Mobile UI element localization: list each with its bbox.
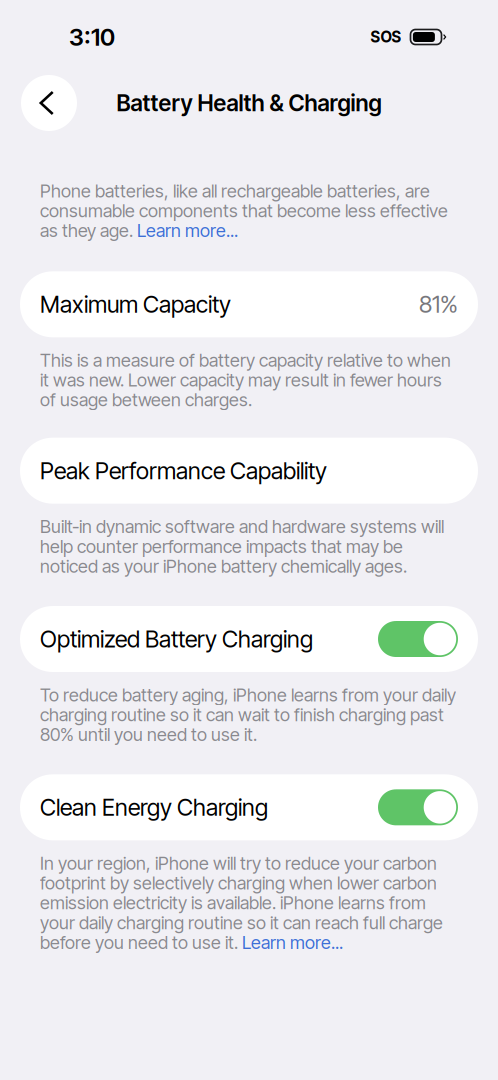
staticText: Clean Energy Charging (40, 793, 268, 821)
staticText: 3:10 (69, 22, 115, 51)
staticText: Optimized Battery Charging (40, 625, 313, 653)
button[interactable]: Optimized Battery Charging, on (378, 621, 458, 657)
staticText: SOS (370, 28, 401, 46)
staticText: Maximum Capacity (40, 290, 231, 318)
button[interactable]: Back (21, 75, 77, 131)
staticText: Battery Health & Charging (116, 89, 381, 117)
staticText: Peak Performance Capability (40, 457, 327, 485)
staticText: In your region, iPhone will try to reduc… (40, 852, 443, 953)
staticText: 81% (419, 290, 458, 318)
staticText: This is a measure of battery capacity re… (40, 349, 451, 411)
staticText: Built-in dynamic software and hardware s… (40, 516, 444, 577)
button[interactable]: Peak Performance Capability (0, 438, 498, 504)
button[interactable]: Clean Energy Charging, on (378, 789, 458, 825)
staticText: To reduce battery aging, iPhone learns f… (40, 684, 456, 745)
staticText: Phone batteries, like all rechargeable b… (40, 180, 448, 241)
